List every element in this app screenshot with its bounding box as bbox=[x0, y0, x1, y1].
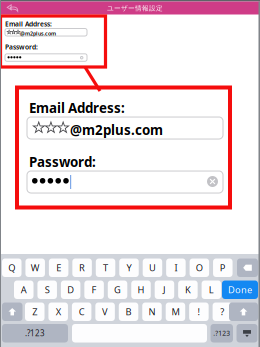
staticText: T bbox=[103, 262, 108, 274]
staticText: H bbox=[137, 284, 144, 296]
button[interactable]: N bbox=[142, 302, 162, 321]
staticText: G bbox=[114, 284, 121, 296]
staticText: O bbox=[196, 262, 203, 274]
button[interactable]: Delete bbox=[237, 258, 258, 277]
button[interactable]: F bbox=[84, 280, 104, 299]
staticText: W bbox=[31, 262, 40, 274]
button[interactable]: Back bbox=[7, 4, 18, 12]
staticText: C bbox=[79, 306, 85, 318]
staticText: V bbox=[102, 306, 108, 318]
button[interactable]: K bbox=[178, 280, 198, 299]
button[interactable]: ? bbox=[213, 302, 232, 321]
staticText: R bbox=[79, 262, 85, 274]
staticText: Q bbox=[8, 262, 15, 274]
staticText: L bbox=[209, 284, 214, 296]
button[interactable]: W bbox=[25, 258, 45, 277]
staticText: A bbox=[21, 284, 27, 296]
staticText: X bbox=[56, 306, 61, 318]
button[interactable]: Shift bbox=[2, 302, 22, 321]
staticText: N bbox=[148, 306, 155, 318]
staticText: U bbox=[149, 262, 156, 274]
staticText: .?123 bbox=[213, 329, 230, 338]
staticText: Password: bbox=[29, 153, 96, 171]
button[interactable]: .?123 bbox=[2, 324, 68, 342]
staticText: Password: bbox=[5, 42, 38, 51]
button[interactable]: U bbox=[143, 258, 162, 277]
button[interactable]: V bbox=[95, 302, 115, 321]
button[interactable]: Q bbox=[2, 258, 21, 277]
staticText: .?123 bbox=[25, 328, 45, 338]
staticText: P bbox=[220, 262, 226, 274]
staticText: @m2plus.com bbox=[20, 30, 56, 37]
staticText: Y bbox=[126, 262, 131, 274]
staticText: Email Address: bbox=[5, 19, 52, 28]
button[interactable]: B bbox=[119, 302, 138, 321]
staticText: ! bbox=[197, 306, 200, 318]
staticText: Done bbox=[228, 284, 252, 296]
button[interactable]: T bbox=[96, 258, 115, 277]
button[interactable]: Z bbox=[25, 302, 44, 321]
staticText: Email Address: bbox=[29, 99, 125, 117]
staticText: M bbox=[171, 306, 179, 318]
button[interactable]: G bbox=[108, 280, 127, 299]
staticText: ? bbox=[220, 306, 224, 318]
staticText: D bbox=[67, 284, 74, 296]
staticText: S bbox=[45, 284, 50, 296]
button[interactable]: M bbox=[166, 302, 185, 321]
staticText: Z bbox=[32, 306, 37, 318]
button[interactable]: I bbox=[166, 258, 186, 277]
button[interactable]: S bbox=[37, 280, 57, 299]
staticText: F bbox=[92, 284, 97, 296]
staticText: B bbox=[125, 306, 131, 318]
staticText: ユーザー情報設定 bbox=[107, 4, 163, 12]
button[interactable]: Done bbox=[222, 280, 258, 299]
button[interactable]: Y bbox=[119, 258, 139, 277]
button[interactable]: R bbox=[72, 258, 92, 277]
button[interactable]: C bbox=[72, 302, 91, 321]
button[interactable]: .?123 bbox=[210, 324, 233, 342]
staticText: E bbox=[56, 262, 61, 274]
button[interactable]: Clear text bbox=[207, 176, 218, 187]
button[interactable]: J bbox=[155, 280, 174, 299]
button[interactable]: Clear text bbox=[80, 56, 83, 59]
button[interactable]: A bbox=[14, 280, 33, 299]
staticText: J bbox=[163, 284, 166, 296]
button[interactable]: Shift bbox=[229, 302, 258, 321]
button[interactable]: L bbox=[202, 280, 221, 299]
button[interactable]: X bbox=[48, 302, 68, 321]
button[interactable]: ! bbox=[189, 302, 209, 321]
staticText: @m2plus.com bbox=[70, 121, 163, 139]
button[interactable]: E bbox=[49, 258, 68, 277]
button[interactable]: D bbox=[61, 280, 80, 299]
button[interactable]: Hide keyboard bbox=[236, 324, 257, 342]
button[interactable]: P bbox=[213, 258, 232, 277]
staticText: I bbox=[174, 262, 177, 274]
button[interactable]: O bbox=[190, 258, 209, 277]
button[interactable]: H bbox=[131, 280, 151, 299]
staticText: K bbox=[185, 284, 191, 296]
